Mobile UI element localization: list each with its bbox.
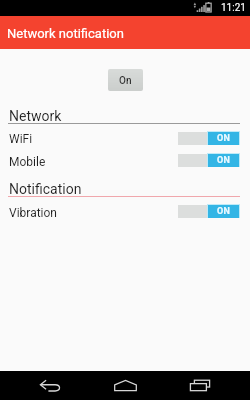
staticText: WiFi: [9, 132, 33, 146]
staticText: ON: [217, 206, 231, 217]
button[interactable]: On: [108, 69, 143, 91]
button[interactable]: Mobile: [0, 153, 250, 167]
button[interactable]: ON: [178, 204, 240, 218]
button[interactable]: ON: [178, 153, 240, 167]
button[interactable]: Recent apps: [180, 371, 220, 400]
staticText: 11:21: [221, 2, 246, 14]
staticText: ON: [217, 155, 231, 166]
button[interactable]: Back: [30, 371, 70, 400]
button[interactable]: Vibration: [0, 204, 250, 218]
staticText: Mobile: [9, 155, 46, 169]
button[interactable]: WiFi: [0, 131, 250, 145]
staticText: Notification: [9, 181, 82, 197]
staticText: ON: [217, 133, 231, 144]
button[interactable]: Home: [105, 371, 145, 400]
staticText: On: [119, 75, 132, 87]
staticText: Network notification: [7, 26, 124, 41]
staticText: Network: [9, 108, 62, 124]
staticText: Vibration: [9, 206, 57, 220]
button[interactable]: ON: [178, 131, 240, 145]
